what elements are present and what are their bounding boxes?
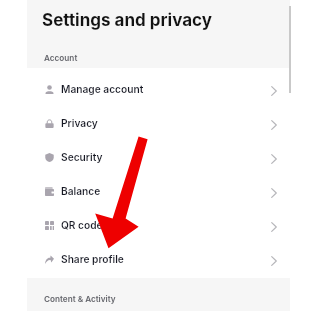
staticText: Settings and privacy xyxy=(42,10,212,31)
button[interactable]: Security xyxy=(27,140,290,174)
staticText: Balance xyxy=(61,185,101,197)
button[interactable]: Privacy xyxy=(27,106,290,140)
staticText: Share profile xyxy=(61,253,124,265)
staticText: Manage account xyxy=(61,83,144,95)
staticText: Content & Activity xyxy=(44,294,116,304)
staticText: Privacy xyxy=(61,117,98,129)
staticText: Security xyxy=(61,151,103,163)
button[interactable]: QR code xyxy=(27,208,290,242)
button[interactable]: Manage account xyxy=(27,72,290,106)
button[interactable]: Balance xyxy=(27,174,290,208)
staticText: QR code xyxy=(61,219,103,231)
staticText: Account xyxy=(44,53,78,63)
button[interactable]: Share profile xyxy=(27,242,290,276)
